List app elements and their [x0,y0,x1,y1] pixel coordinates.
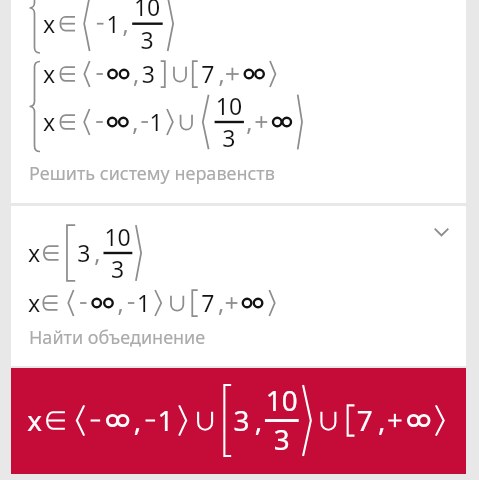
staticText: Решить систему неравенств [29,161,275,186]
button[interactable] [11,368,466,474]
button[interactable]: Решить систему неравенств [11,0,466,203]
staticText: Найти объединение [29,325,206,350]
button[interactable]: Найти объединение [11,206,466,366]
button[interactable]: Expand step [418,208,466,256]
